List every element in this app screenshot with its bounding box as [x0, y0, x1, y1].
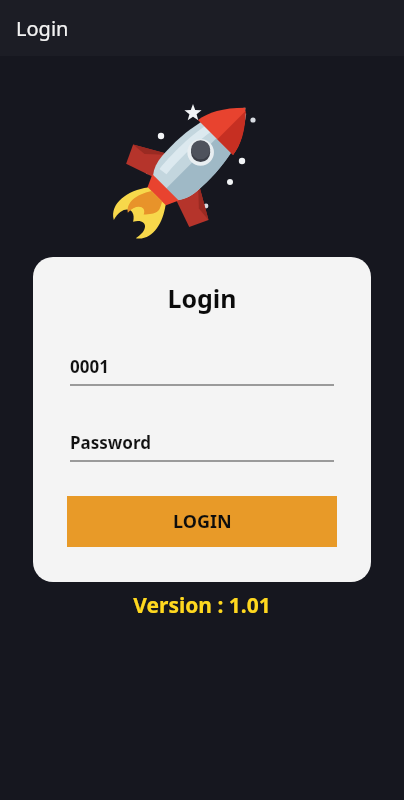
- button[interactable]: 0001: [70, 355, 334, 386]
- staticText: Version : 1.01: [0, 591, 404, 620]
- staticText: Login: [33, 281, 371, 315]
- staticText: LOGIN: [173, 509, 232, 534]
- staticText: Login: [16, 15, 69, 42]
- staticText: 0001: [70, 355, 109, 378]
- staticText: Password: [70, 431, 151, 454]
- button[interactable]: LOGIN: [67, 496, 337, 547]
- button[interactable]: Password: [70, 431, 334, 462]
